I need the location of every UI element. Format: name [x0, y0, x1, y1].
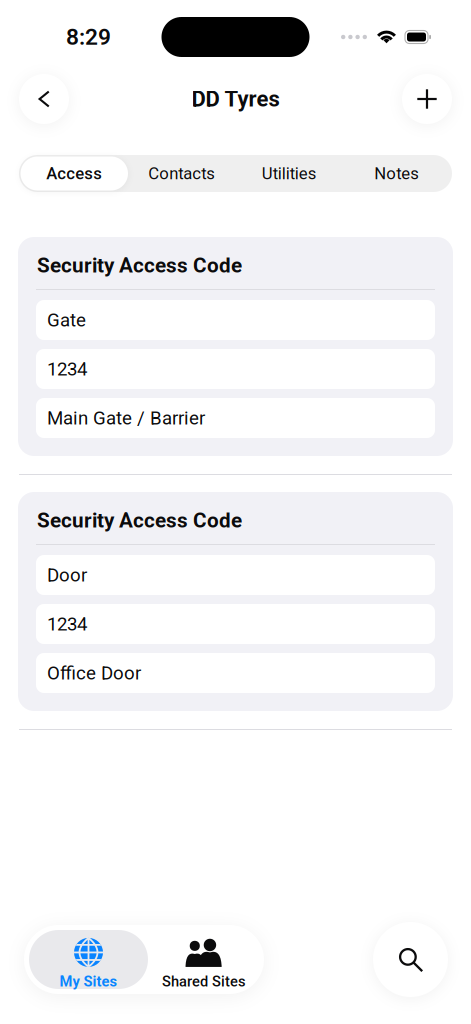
staticText: Security Access Code [37, 253, 242, 278]
staticText: Access [46, 164, 102, 183]
staticText: Office Door [47, 662, 141, 684]
staticText: Main Gate / Barrier [47, 407, 205, 429]
staticText: Security Access Code [37, 508, 242, 533]
button[interactable]: My Sites [29, 930, 148, 989]
staticText: 1234 [47, 358, 87, 380]
button[interactable]: Add [402, 74, 452, 124]
button[interactable]: Shared Sites [149, 930, 259, 989]
staticText: Gate [47, 309, 86, 331]
button[interactable]: Contacts [128, 156, 235, 190]
staticText: 1234 [47, 613, 87, 635]
button[interactable]: Back [19, 74, 69, 124]
staticText: My Sites [59, 973, 117, 990]
staticText: Notes [374, 164, 419, 183]
staticText: 8:29 [66, 24, 111, 50]
staticText: Contacts [148, 164, 215, 183]
staticText: Shared Sites [162, 973, 246, 990]
staticText: Door [47, 564, 87, 586]
button[interactable]: Search [373, 922, 448, 997]
button[interactable]: Notes [343, 156, 450, 190]
button[interactable]: Utilities [235, 156, 343, 190]
staticText: Utilities [262, 164, 317, 183]
staticText: DD Tyres [191, 86, 279, 112]
button[interactable]: Access [20, 156, 128, 190]
